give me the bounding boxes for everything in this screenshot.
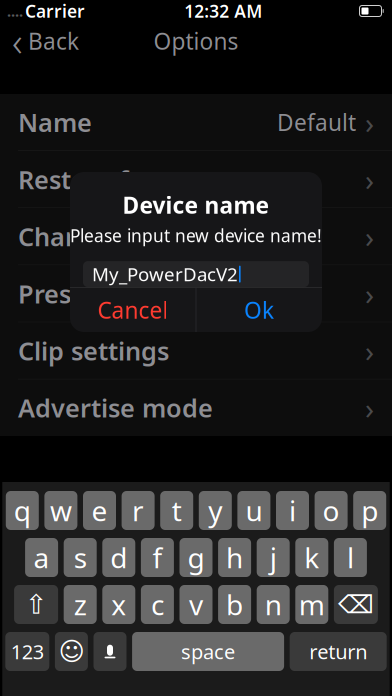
button[interactable]: Dictation [93,632,126,671]
staticText: d [110,539,127,576]
button[interactable]: 123 [5,632,49,671]
button[interactable]: o [315,491,348,530]
button[interactable]: d [102,538,135,577]
staticText: k [304,539,319,576]
staticText: Back [28,26,79,56]
button[interactable]: u [237,491,270,530]
button[interactable]: n [257,585,290,624]
staticText: e [91,492,107,529]
staticText: Preset name [18,277,173,310]
staticText: Default [277,107,356,137]
button[interactable]: p [353,491,386,530]
staticText: › [365,160,374,199]
staticText: Please input new device name! [70,224,322,247]
button[interactable]: return [290,632,387,671]
staticText: ☺ [58,637,84,666]
button[interactable]: w [44,491,77,530]
button[interactable]: s [64,538,97,577]
staticText: y [208,492,222,529]
button[interactable]: v [179,585,212,624]
staticText: My_PowerDacV2 [92,262,238,286]
button[interactable]: x [102,585,135,624]
button[interactable]: y [199,491,232,530]
button[interactable]: Clip settings [0,322,392,379]
staticText: n [265,586,282,623]
button[interactable]: h [218,538,251,577]
button[interactable]: m [295,585,328,624]
staticText: o [323,492,340,529]
staticText: u [245,492,262,529]
staticText: s [74,539,87,576]
staticText: h [226,539,243,576]
button[interactable]: t [160,491,193,530]
staticText: r [132,492,144,529]
button[interactable]: Delete [334,585,378,624]
staticText: Carrier [25,0,85,22]
staticText: › [365,388,374,427]
staticText: Ok [244,295,274,325]
button[interactable]: b [218,585,251,624]
button[interactable]: q [6,491,39,530]
staticText: q [14,492,31,529]
staticText: Cancel [97,295,168,325]
button[interactable]: Preset name [0,265,392,322]
staticText: g [187,539,204,576]
staticText: z [74,586,87,623]
button[interactable]: k [295,538,328,577]
staticText: c [151,586,164,623]
button[interactable]: e [83,491,116,530]
staticText: › [365,331,374,370]
staticText: x [111,586,126,623]
button[interactable]: Shift [14,585,58,624]
button[interactable]: Advertise mode [0,379,392,436]
button[interactable]: g [179,538,212,577]
button[interactable]: space [132,632,284,671]
staticText: b [226,586,243,623]
staticText: w [50,492,72,529]
staticText: › [365,103,374,142]
button[interactable]: l [334,538,367,577]
staticText: a [34,539,50,576]
staticText: Device name [122,190,269,220]
staticText: Clip settings [18,334,169,367]
button[interactable]: z [64,585,97,624]
button[interactable]: Change device name [0,208,392,265]
staticText: .... [7,1,23,21]
staticText: l [347,539,354,576]
button[interactable]: Restore factory [0,151,392,208]
staticText: m [299,586,325,623]
staticText: f [152,539,162,576]
button[interactable]: Emoji [55,632,88,671]
staticText: Advertise mode [18,391,213,424]
staticText: space [181,638,235,665]
button[interactable]: j [257,538,290,577]
staticText: ⌫ [338,590,374,619]
staticText: › [365,217,374,256]
staticText: return [309,638,367,665]
button[interactable]: Ok [196,288,322,332]
staticText: p [361,492,378,529]
staticText: Name [18,105,92,139]
staticText: j [270,539,277,576]
staticText: t [172,492,182,529]
button[interactable]: r [122,491,155,530]
staticText: Change device name [18,220,275,253]
button[interactable]: c [141,585,174,624]
staticText: i [289,492,296,529]
button[interactable]: i [276,491,309,530]
staticText: 123 [11,638,44,665]
staticText: v [189,586,203,623]
staticText: Options [153,26,238,56]
staticText: 12:32 AM [184,0,262,22]
button[interactable]: a [25,538,58,577]
staticText: Restore factory [18,162,207,196]
staticText: ‹ [12,14,23,67]
staticText: › [365,274,374,313]
button[interactable]: Name [0,94,392,150]
button[interactable]: Cancel [70,288,196,332]
button[interactable]: ‹ [0,22,91,60]
staticText: ⇧ [25,589,47,620]
button[interactable]: f [141,538,174,577]
